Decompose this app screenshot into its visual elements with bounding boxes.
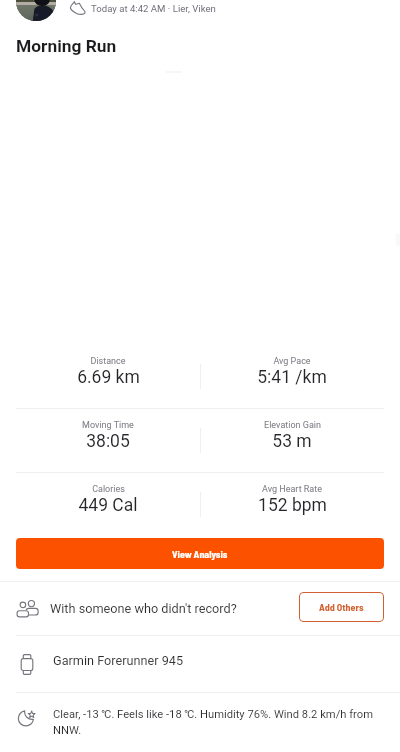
staticText: 38:05	[86, 431, 130, 452]
staticText: 53 m	[272, 431, 312, 452]
staticText: Garmin Forerunner 945	[53, 653, 184, 668]
button[interactable]: Add Others	[299, 592, 384, 622]
staticText: Avg Heart Rate	[262, 484, 322, 495]
staticText: With someone who didn't record?	[50, 601, 237, 616]
button[interactable]: View Analysis	[16, 538, 384, 569]
staticText: 5:41 /km	[257, 367, 327, 388]
staticText: 449 Cal	[78, 495, 138, 516]
staticText: Add Others	[319, 601, 364, 613]
staticText: Distance	[90, 356, 126, 367]
staticText: Moving Time	[82, 420, 134, 431]
button[interactable]: Profile photo	[16, 0, 56, 21]
button[interactable]: With someone who didn't record?	[0, 582, 400, 635]
button[interactable]: Clear, -13 ℃. Feels like -18 ℃. Humidity…	[0, 693, 400, 752]
staticText: Calories	[92, 484, 125, 495]
staticText: 6.69 km	[77, 367, 140, 388]
staticText: Morning Run	[16, 36, 117, 56]
button[interactable]: Garmin Forerunner 945	[0, 636, 400, 692]
staticText: 152 bpm	[258, 495, 327, 516]
staticText: Clear, -13 ℃. Feels like -18 ℃. Humidity…	[53, 708, 383, 737]
staticText: Avg Pace	[273, 356, 311, 367]
staticText: View Analysis	[172, 548, 228, 560]
staticText: Today at 4:42 AM · Lier, Viken	[91, 3, 216, 14]
staticText: Elevation Gain	[264, 420, 321, 431]
